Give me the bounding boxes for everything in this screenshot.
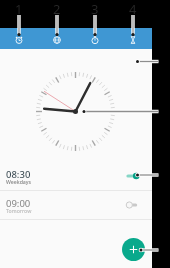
button[interactable]: Alarm off (126, 201, 139, 209)
button[interactable]: Timer (114, 28, 152, 49)
staticText: 2 (53, 0, 61, 15)
button[interactable]: Alarm (0, 28, 38, 49)
button[interactable]: Stopwatch (76, 28, 114, 49)
staticText: 09:00 (6, 197, 31, 210)
button[interactable]: Add alarm (122, 238, 145, 261)
button[interactable]: 08:30 (0, 162, 152, 190)
staticText: 08:30 (6, 168, 31, 181)
staticText: 1 (15, 0, 23, 15)
button[interactable]: 09:00 (0, 191, 152, 219)
staticText: Tomorrow (6, 207, 32, 214)
staticText: 4 (129, 0, 137, 15)
button[interactable]: Alarm on (126, 172, 139, 180)
staticText: Weekdays (6, 178, 32, 185)
staticText: 3 (91, 0, 99, 15)
button[interactable]: World clock (38, 28, 76, 49)
